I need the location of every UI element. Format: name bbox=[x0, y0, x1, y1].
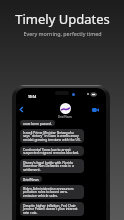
staticText: Every morning, perfectly timed bbox=[23, 30, 102, 37]
button[interactable]: Despite higher inflation, Fed Chair Jero… bbox=[20, 202, 84, 216]
staticText: BriefNews bbox=[58, 115, 72, 119]
button[interactable]: nave been passed. bbox=[20, 120, 55, 126]
button[interactable]: Biden Administration announces pollution… bbox=[20, 185, 84, 199]
button[interactable]: Israeli Prime Minister Netanyahu says "v… bbox=[20, 129, 84, 143]
button[interactable]: Back bbox=[17, 105, 26, 114]
button[interactable]: Disney's legal battle with Florida Gover… bbox=[20, 159, 84, 173]
staticText: Biden Administration announces pollution… bbox=[23, 186, 81, 198]
staticText: Continental Texas law to arrest suspecte… bbox=[23, 147, 81, 155]
staticText: Despite higher inflation, Fed Chair Jero… bbox=[23, 203, 81, 215]
button[interactable]: BriefNews bbox=[58, 103, 72, 119]
staticText: BriefNews bbox=[23, 177, 39, 181]
staticText: Timely Updates bbox=[15, 10, 110, 28]
staticText: Disney's legal battle with Florida Gover… bbox=[23, 160, 81, 172]
staticText: Israeli Prime Minister Netanyahu says "v… bbox=[23, 130, 81, 142]
button[interactable]: Video call bbox=[91, 105, 100, 114]
button[interactable]: Continental Texas law to arrest suspecte… bbox=[20, 146, 84, 156]
button[interactable]: BriefNews bbox=[20, 176, 42, 182]
staticText: 10:14 bbox=[28, 95, 37, 99]
staticText: nave been passed. bbox=[23, 121, 52, 125]
